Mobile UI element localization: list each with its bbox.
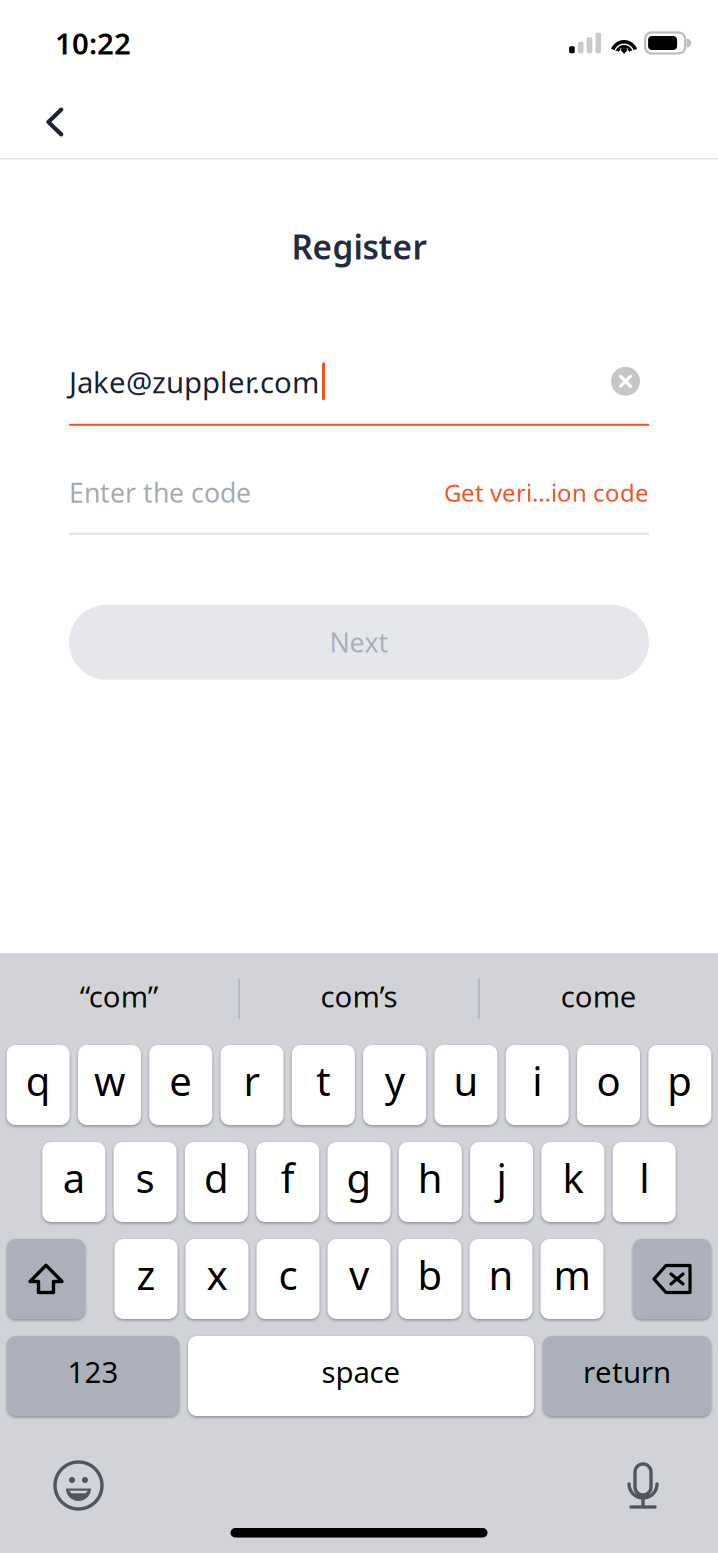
button[interactable]: u — [434, 1045, 497, 1125]
button[interactable]: o — [577, 1045, 640, 1125]
button[interactable]: Clear text — [602, 362, 649, 409]
button[interactable]: g — [327, 1142, 390, 1222]
staticText: f — [281, 1151, 295, 1204]
button[interactable]: l — [613, 1142, 676, 1222]
staticText: h — [418, 1151, 443, 1204]
staticText: a — [63, 1151, 85, 1204]
button[interactable]: c — [256, 1239, 319, 1319]
button[interactable]: s — [114, 1142, 177, 1222]
button[interactable]: j — [470, 1142, 533, 1222]
button[interactable]: com’s — [240, 953, 478, 1045]
staticText: space — [321, 1352, 400, 1391]
staticText: y — [385, 1054, 405, 1107]
button[interactable]: v — [327, 1239, 390, 1319]
button[interactable]: r — [220, 1045, 283, 1125]
staticText: 10:22 — [55, 23, 131, 62]
staticText: v — [349, 1248, 369, 1301]
staticText: return — [583, 1352, 671, 1391]
button[interactable]: Get veri…ion code — [444, 476, 649, 508]
staticText: j — [497, 1151, 507, 1204]
button[interactable]: f — [256, 1142, 319, 1222]
button[interactable]: h — [399, 1142, 462, 1222]
button[interactable]: Shift — [7, 1239, 85, 1319]
staticText: n — [488, 1248, 513, 1301]
staticText: p — [667, 1054, 692, 1107]
staticText: x — [206, 1248, 227, 1301]
staticText: z — [136, 1248, 155, 1301]
staticText: i — [532, 1054, 542, 1107]
staticText: Get veri…ion code — [444, 476, 649, 508]
staticText: r — [243, 1054, 260, 1107]
staticText: t — [316, 1054, 330, 1107]
button[interactable]: q — [7, 1045, 70, 1125]
staticText: s — [136, 1151, 155, 1204]
staticText: Enter the code — [69, 475, 251, 510]
button[interactable]: come — [480, 953, 718, 1045]
staticText: u — [453, 1054, 478, 1107]
staticText: l — [639, 1151, 649, 1204]
button[interactable]: return — [543, 1336, 711, 1416]
button[interactable]: i — [506, 1045, 569, 1125]
button[interactable]: p — [648, 1045, 711, 1125]
staticText: c — [278, 1248, 297, 1301]
button[interactable]: t — [292, 1045, 355, 1125]
button[interactable]: Back — [22, 91, 88, 153]
button[interactable]: x — [185, 1239, 248, 1319]
button[interactable]: z — [114, 1239, 177, 1319]
button[interactable]: Dictation — [607, 1445, 679, 1526]
staticText: 123 — [67, 1352, 118, 1391]
button[interactable]: space — [188, 1336, 534, 1416]
staticText: Next — [329, 625, 388, 660]
staticText: w — [94, 1054, 125, 1107]
button[interactable]: d — [185, 1142, 248, 1222]
staticText: Register — [291, 224, 426, 269]
button[interactable]: Next — [69, 605, 649, 680]
staticText: Jake@zuppler.com — [69, 362, 319, 401]
staticText: g — [346, 1151, 371, 1204]
button[interactable]: w — [78, 1045, 141, 1125]
button[interactable]: n — [469, 1239, 532, 1319]
staticText: q — [26, 1054, 51, 1107]
button[interactable]: “com” — [0, 953, 238, 1045]
staticText: d — [204, 1151, 229, 1204]
staticText: e — [169, 1054, 192, 1107]
button[interactable]: y — [363, 1045, 426, 1125]
button[interactable]: m — [540, 1239, 603, 1319]
staticText: o — [596, 1054, 620, 1107]
staticText: “com” — [80, 976, 159, 1015]
button[interactable]: k — [541, 1142, 604, 1222]
staticText: k — [562, 1151, 583, 1204]
staticText: b — [417, 1248, 442, 1301]
staticText: m — [553, 1248, 590, 1301]
staticText: com’s — [320, 976, 397, 1015]
button[interactable]: 123 — [7, 1336, 179, 1416]
staticText: come — [561, 976, 637, 1015]
button[interactable]: Delete — [633, 1239, 711, 1319]
button[interactable]: Emoji keyboard — [39, 1446, 118, 1525]
button[interactable]: a — [42, 1142, 105, 1222]
button[interactable]: b — [398, 1239, 461, 1319]
button[interactable]: e — [149, 1045, 212, 1125]
